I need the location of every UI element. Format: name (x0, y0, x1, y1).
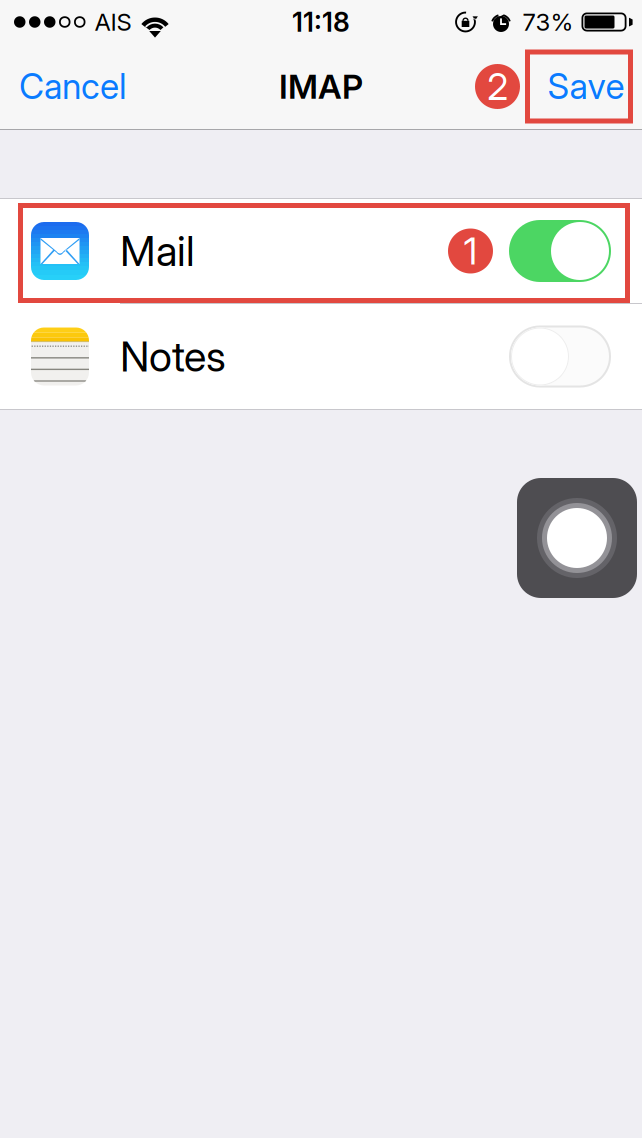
button[interactable]: Save (525, 49, 633, 123)
staticText: Notes (120, 331, 226, 381)
staticText: 73% (522, 7, 573, 36)
staticText: IMAP (279, 66, 363, 107)
staticText: 2 (487, 64, 508, 109)
staticText: 11:18 (292, 6, 350, 38)
button[interactable]: Mail (0, 199, 642, 303)
button[interactable]: Notes (0, 304, 642, 409)
staticText: Cancel (19, 65, 127, 107)
button[interactable]: Cancel (0, 44, 200, 129)
staticText: 1 (463, 228, 477, 274)
staticText: AIS (94, 7, 131, 36)
staticText: Save (547, 65, 624, 107)
staticText: Mail (120, 226, 195, 276)
